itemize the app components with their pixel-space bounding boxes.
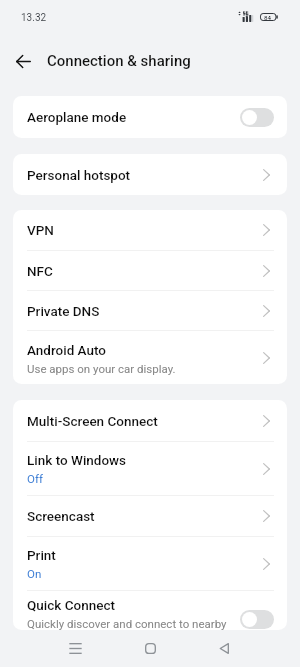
button[interactable]: Aeroplane mode bbox=[13, 96, 287, 138]
button[interactable]: Toggle bbox=[240, 108, 274, 127]
button[interactable]: Home bbox=[126, 630, 174, 667]
button[interactable]: Toggle bbox=[240, 610, 274, 629]
staticText: Aeroplane mode bbox=[27, 109, 127, 125]
button[interactable]: Screencast bbox=[13, 496, 287, 536]
staticText: NFC bbox=[27, 263, 53, 279]
staticText: Link to Windows bbox=[27, 452, 127, 468]
staticText: Personal hotspot bbox=[27, 167, 131, 183]
staticText: Private DNS bbox=[27, 303, 100, 319]
staticText: Connection & sharing bbox=[47, 52, 191, 70]
button[interactable]: Private DNS bbox=[13, 291, 287, 330]
button[interactable]: Recent apps bbox=[51, 630, 99, 667]
staticText: On bbox=[27, 567, 42, 580]
staticText: Off bbox=[27, 472, 43, 485]
button[interactable]: NFC bbox=[13, 251, 287, 290]
staticText: Multi-Screen Connect bbox=[27, 413, 158, 429]
button[interactable]: Personal hotspot bbox=[13, 154, 287, 195]
staticText: 84 bbox=[264, 14, 272, 21]
staticText: Android Auto bbox=[27, 342, 107, 358]
staticText: 13.32 bbox=[21, 12, 47, 24]
staticText: Quick Connect bbox=[27, 597, 115, 613]
button[interactable]: Back bbox=[7, 45, 40, 78]
staticText: VPN bbox=[27, 222, 54, 238]
button[interactable]: Multi-Screen Connect bbox=[13, 400, 287, 441]
staticText: Screencast bbox=[27, 508, 95, 524]
staticText: Use apps on your car display. bbox=[27, 362, 176, 375]
button[interactable]: VPN bbox=[13, 210, 287, 250]
button[interactable]: Print bbox=[13, 537, 287, 590]
button[interactable]: Back bbox=[200, 630, 248, 667]
button[interactable]: Android Auto bbox=[13, 331, 287, 384]
staticText: Print bbox=[27, 547, 56, 563]
staticText: Quickly discover and connect to nearby bbox=[27, 617, 227, 630]
button[interactable]: Link to Windows bbox=[13, 442, 287, 495]
button[interactable]: Quick Connect bbox=[13, 591, 287, 630]
